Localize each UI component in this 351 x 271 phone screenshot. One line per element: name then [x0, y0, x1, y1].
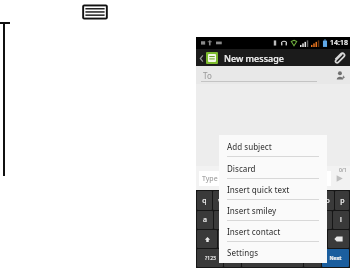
button[interactable]: ?123	[197, 249, 223, 267]
staticText: l	[340, 215, 342, 225]
button[interactable]: b	[280, 230, 295, 248]
button[interactable]: q	[197, 191, 212, 210]
staticText: Discard	[227, 163, 256, 174]
staticText: h	[288, 215, 293, 225]
staticText: b	[285, 234, 290, 244]
button[interactable]: a	[197, 211, 213, 229]
button[interactable]: ⌫	[328, 230, 349, 248]
button[interactable]: u	[290, 191, 304, 210]
button[interactable]: i	[305, 191, 319, 210]
staticText: p	[340, 196, 345, 206]
button[interactable]: Attach	[327, 51, 350, 64]
button[interactable]: Navigate up	[196, 52, 221, 64]
button[interactable]: g	[265, 211, 281, 229]
staticText: To	[203, 70, 212, 81]
button[interactable]: Settings	[219, 242, 327, 263]
staticText: Insert smiley	[227, 205, 277, 216]
staticText: 0/1	[339, 167, 347, 174]
button[interactable]: j	[299, 211, 315, 229]
button[interactable]: t	[260, 191, 274, 210]
button[interactable]: s	[214, 211, 230, 229]
button[interactable]: Add recipient from contacts	[335, 70, 346, 81]
staticText: j	[306, 215, 308, 225]
staticText: x	[238, 234, 242, 244]
staticText: o	[325, 196, 330, 206]
staticText: t	[266, 196, 269, 206]
staticText: 14:18	[330, 38, 348, 48]
button[interactable]: c	[248, 230, 263, 248]
button[interactable]: .	[304, 249, 321, 267]
button[interactable]: ␣	[242, 249, 303, 267]
button[interactable]: To	[196, 66, 350, 84]
button[interactable]: m	[312, 230, 327, 248]
button[interactable]: k	[316, 211, 332, 229]
button[interactable]: v	[264, 230, 279, 248]
staticText: e	[235, 196, 239, 206]
button[interactable]: Insert smiley	[219, 200, 327, 221]
staticText: n	[301, 234, 306, 244]
staticText: Add subject	[227, 141, 272, 152]
button[interactable]: l	[333, 211, 349, 229]
staticText: c	[254, 234, 258, 244]
button[interactable]: Insert contact	[219, 221, 327, 242]
staticText: Type message	[202, 174, 249, 184]
button[interactable]: z	[218, 230, 232, 248]
staticText: v	[270, 234, 274, 244]
staticText: g	[271, 215, 276, 225]
staticText: Next	[329, 255, 342, 262]
staticText: y	[280, 196, 284, 206]
button[interactable]: Insert quick text	[219, 179, 327, 200]
button[interactable]: Type message	[199, 171, 331, 186]
staticText: f	[255, 215, 258, 225]
button[interactable]: Next	[322, 249, 349, 267]
button[interactable]: x	[233, 230, 247, 248]
staticText: i	[311, 196, 313, 206]
staticText: New message	[224, 52, 284, 64]
button[interactable]: e	[229, 191, 244, 210]
staticText: r	[251, 196, 254, 206]
staticText: d	[237, 215, 242, 225]
button[interactable]: Discard	[219, 157, 327, 179]
button[interactable]: Add subject	[219, 135, 327, 157]
button[interactable]: r	[245, 191, 259, 210]
button[interactable]: h	[282, 211, 298, 229]
staticText: w	[218, 196, 224, 206]
button[interactable]: f	[248, 211, 264, 229]
staticText: Settings	[227, 247, 259, 258]
button[interactable]: ⇧	[197, 230, 217, 248]
staticText: a	[203, 215, 207, 225]
staticText: Insert quick text	[227, 184, 290, 195]
staticText: ?123	[205, 255, 216, 262]
button[interactable]: o	[320, 191, 334, 210]
staticText: ,	[232, 253, 234, 263]
staticText: m	[316, 234, 323, 244]
button[interactable]: Send	[331, 171, 347, 186]
staticText: Insert contact	[227, 226, 281, 237]
staticText: u	[295, 196, 300, 206]
staticText: q	[202, 196, 207, 206]
button[interactable]: n	[296, 230, 311, 248]
button[interactable]: ,	[224, 249, 241, 267]
button[interactable]: p	[335, 191, 349, 210]
button[interactable]: w	[213, 191, 228, 210]
button[interactable]: d	[231, 211, 247, 229]
button[interactable]: y	[275, 191, 289, 210]
